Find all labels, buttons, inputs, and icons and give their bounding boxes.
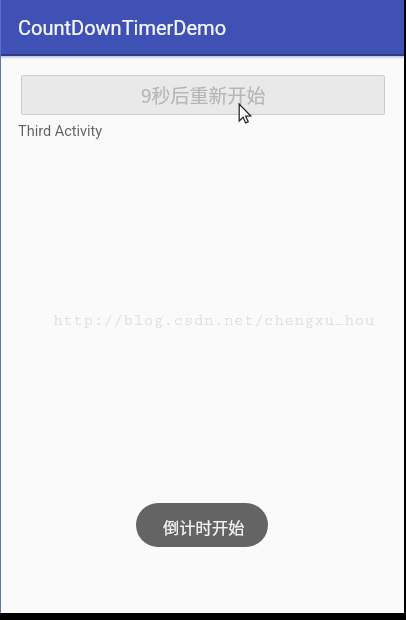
other: Cursor <box>238 103 254 125</box>
button[interactable]: 倒计时开始 <box>136 503 268 547</box>
staticText: http://blog.csdn.net/chengxu_hou <box>53 311 375 329</box>
button[interactable]: 9秒后重新开始 <box>21 75 385 115</box>
staticText: 倒计时开始 <box>163 515 245 539</box>
staticText: CountDownTimerDemo <box>18 16 227 39</box>
staticText: 9秒后重新开始 <box>141 81 266 109</box>
staticText: Third Activity <box>18 123 103 140</box>
